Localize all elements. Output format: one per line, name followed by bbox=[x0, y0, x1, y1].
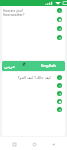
button[interactable]: Play translation bbox=[57, 8, 62, 13]
button[interactable]: Copy text bbox=[57, 17, 62, 22]
staticText: How are you? How weather? bbox=[3, 9, 27, 17]
button[interactable]: عربي bbox=[4, 64, 16, 69]
button[interactable]: Delete bbox=[57, 107, 62, 112]
staticText: كيف حالك؟ كيف الجو؟ bbox=[17, 75, 51, 80]
button[interactable]: Copy text bbox=[57, 99, 62, 104]
button[interactable]: Swap languages bbox=[22, 62, 26, 66]
button[interactable]: Recent apps bbox=[9, 139, 19, 149]
button[interactable]: Home bbox=[29, 139, 39, 149]
button[interactable]: Play translation bbox=[57, 75, 62, 80]
button[interactable]: Delete bbox=[57, 35, 62, 40]
button[interactable]: Share bbox=[57, 26, 62, 31]
button[interactable]: Share bbox=[57, 91, 62, 96]
button[interactable]: English bbox=[41, 63, 57, 69]
button[interactable]: Add to favorites bbox=[57, 83, 62, 88]
button[interactable]: Back bbox=[48, 139, 58, 149]
